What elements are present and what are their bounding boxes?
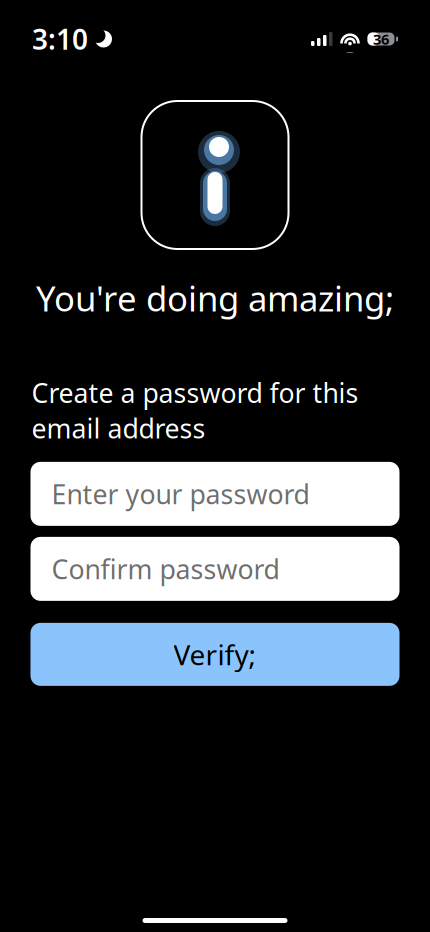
staticText: Create a password for this email address <box>31 375 358 446</box>
staticText: 3:10 <box>32 20 88 58</box>
button[interactable]: Enter your password <box>30 462 399 526</box>
staticText: 36 <box>373 29 389 49</box>
staticText: Enter your password <box>51 476 309 512</box>
button[interactable]: Confirm password <box>30 537 399 601</box>
staticText: You're doing amazing; <box>36 275 394 321</box>
staticText: Verify; <box>173 636 256 673</box>
button[interactable]: Verify; <box>30 623 399 686</box>
staticText: Confirm password <box>51 551 279 587</box>
